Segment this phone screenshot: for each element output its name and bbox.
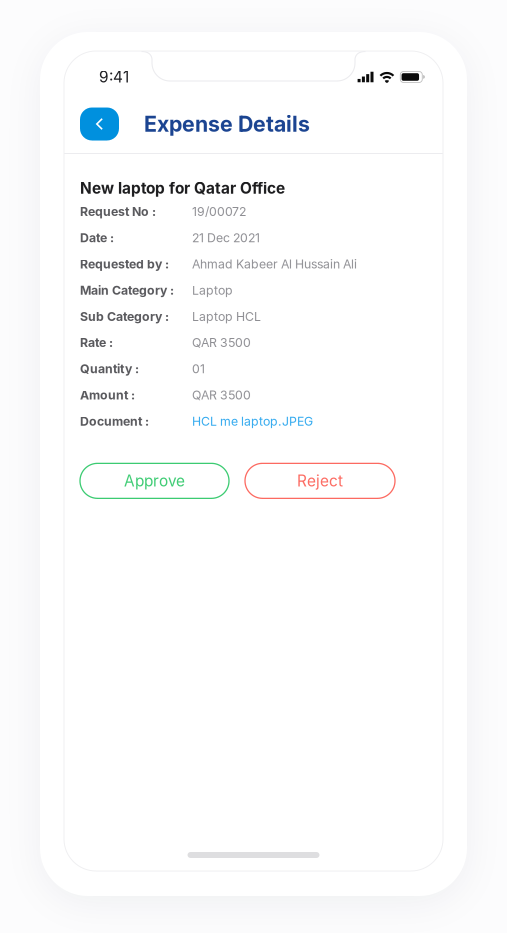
staticText: Date : [80,230,114,245]
staticText: QAR 3500 [192,388,251,402]
staticText: Requested by : [80,257,169,271]
staticText: Main Category : [80,283,174,298]
staticText: Reject [297,472,343,490]
staticText: Sub Category : [80,309,169,324]
button[interactable]: Approve [80,463,229,498]
staticText: Request No : [80,204,156,219]
staticText: New laptop for Qatar Office [80,179,285,198]
staticText: QAR 3500 [192,335,251,350]
staticText: HCL me laptop.JPEG [192,414,313,429]
staticText: Rate : [80,335,113,350]
button[interactable]: Reject [245,463,395,498]
staticText: Laptop HCL [192,309,261,324]
button[interactable]: Back [80,107,119,140]
staticText: Amount : [80,388,135,402]
staticText: Expense Details [144,111,310,137]
staticText: 01 [192,361,205,376]
staticText: Quantity : [80,361,139,376]
staticText: Document : [80,414,149,429]
staticText: Laptop [192,283,233,298]
staticText: 21 Dec 2021 [192,230,260,245]
staticText: 9:41 [99,68,129,86]
staticText: 19/00072 [192,204,246,219]
staticText: Approve [124,472,185,490]
staticText: Ahmad Kabeer Al Hussain Ali [192,257,357,271]
